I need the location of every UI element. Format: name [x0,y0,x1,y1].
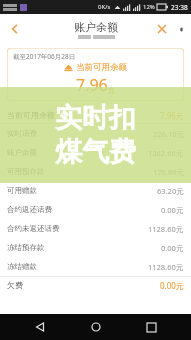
staticText: 元 [108,86,115,95]
staticText: 1128.60元 [148,224,184,234]
button[interactable]: 冻结赠款 [0,257,191,276]
staticText: 可用预存款 [7,167,45,176]
button[interactable]: 合约未返还话费 [0,219,191,238]
button[interactable]: 当前可用余额 [0,107,191,123]
staticText: 0.00元 [161,205,184,215]
staticText: 账户余额 [7,148,37,157]
staticText: 账户余额 [74,20,118,34]
button[interactable]: 可用赠款 [0,181,191,200]
button[interactable]: 合约返还话费 [0,200,191,219]
staticText: 合约返还话费 [7,205,52,214]
staticText: 0.00元 [161,243,184,253]
button[interactable]: 截至2017年06月28日 [7,48,184,101]
staticText: 0K/s [98,3,111,11]
button[interactable]: 账户余额 [0,143,191,162]
button[interactable]: Recent apps [136,314,166,340]
staticText: 当前可用余额 [76,62,127,73]
button[interactable]: 欠费 [0,277,191,293]
staticText: 1128.60元 [148,262,184,272]
staticText: 冻结赠款 [7,262,37,271]
staticText: 实时话费 [7,129,37,138]
button[interactable]: Back [25,314,55,340]
staticText: 170.86元 [153,167,184,177]
staticText: 226.10元 [153,129,184,139]
button[interactable]: 可用预存款 [0,162,191,181]
staticText: 合约未返还话费 [7,224,60,233]
staticText: 7.96 [76,74,108,96]
staticText: 实时扣 [55,101,136,135]
button[interactable]: Close [151,18,173,40]
staticText: 7.96元 [160,110,184,121]
staticText: 冻结预存款 [7,243,45,252]
staticText: 当前可用余额 [7,110,55,120]
staticText: 1362.66元 [148,148,184,158]
staticText: 截至2017年06月28日 [13,52,76,61]
staticText: 0.00元 [160,280,184,291]
button[interactable]: More options [173,21,189,37]
staticText: 63.20元 [157,186,184,196]
button[interactable]: Back [0,14,30,44]
staticText: 欠费 [7,280,23,290]
button[interactable]: 实时话费 [0,124,191,143]
staticText: 23:38 [171,3,188,12]
staticText: 煤气费 [55,135,136,169]
staticText: 可用赠款 [7,186,37,195]
button[interactable]: 冻结预存款 [0,238,191,257]
staticText: 12% [143,3,155,11]
button[interactable]: Home [81,314,111,340]
